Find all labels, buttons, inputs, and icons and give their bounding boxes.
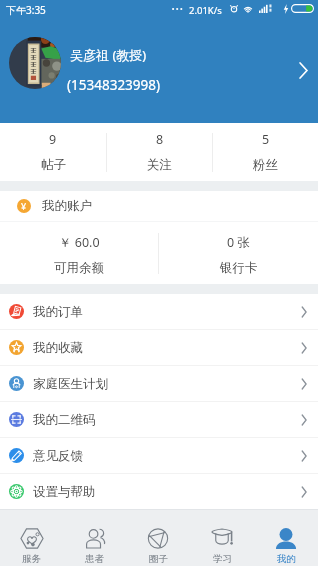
- button[interactable]: 患者: [63, 510, 126, 566]
- staticText: 可用余额: [54, 260, 104, 276]
- staticText: 我的: [277, 553, 296, 565]
- button[interactable]: 家庭医生计划: [0, 366, 318, 401]
- button[interactable]: 9: [0, 123, 106, 181]
- staticText: ¥: [21, 200, 27, 212]
- staticText: ￥ 60.0: [59, 234, 100, 251]
- staticText: 我的订单: [33, 304, 83, 320]
- staticText: 9: [49, 131, 57, 148]
- staticText: 我的收藏: [33, 340, 83, 356]
- staticText: 意见反馈: [33, 448, 83, 464]
- button[interactable]: 0 张: [159, 222, 318, 284]
- staticText: 2.01K/s: [189, 4, 222, 17]
- staticText: 5: [262, 131, 270, 148]
- staticText: 8: [156, 131, 164, 148]
- button[interactable]: 我的收藏: [0, 330, 318, 365]
- staticText: 我的账户: [42, 198, 92, 214]
- staticText: 患者: [85, 553, 104, 565]
- button[interactable]: 服务: [0, 510, 63, 566]
- staticText: 粉丝: [253, 157, 278, 173]
- staticText: 帖子: [41, 157, 66, 173]
- button[interactable]: 意见反馈: [0, 438, 318, 473]
- button[interactable]: ￥ 60.0: [0, 222, 158, 284]
- staticText: 服务: [22, 553, 41, 565]
- button[interactable]: 8: [107, 123, 212, 181]
- staticText: 设置与帮助: [33, 484, 96, 500]
- staticText: 0 张: [227, 234, 250, 251]
- button[interactable]: 圈子: [126, 510, 190, 566]
- staticText: 吴彦祖 (教授): [70, 46, 147, 64]
- staticText: (15348323998): [67, 76, 161, 94]
- button[interactable]: 我的订单: [0, 294, 318, 329]
- staticText: 我的二维码: [33, 412, 96, 428]
- button[interactable]: ¥: [0, 191, 318, 221]
- button[interactable]: 我的二维码: [0, 402, 318, 437]
- staticText: 家庭医生计划: [33, 376, 108, 392]
- staticText: 学习: [213, 553, 232, 565]
- button[interactable]: 吴彦祖 (教授): [0, 18, 318, 123]
- staticText: 银行卡: [220, 260, 258, 276]
- button[interactable]: 5: [213, 123, 318, 181]
- button[interactable]: 学习: [190, 510, 254, 566]
- staticText: 关注: [147, 157, 172, 173]
- staticText: 圈子: [149, 553, 168, 565]
- button[interactable]: 设置与帮助: [0, 474, 318, 509]
- staticText: 下午3:35: [6, 3, 46, 17]
- button[interactable]: 我的: [254, 510, 318, 566]
